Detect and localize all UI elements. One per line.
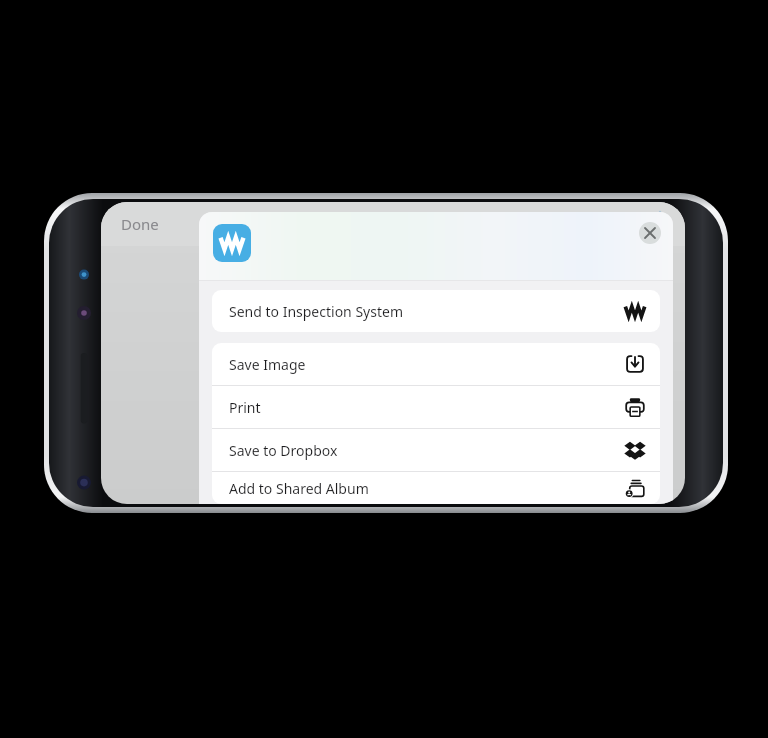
staticText: Send to Inspection System — [229, 302, 403, 321]
staticText: Add to Shared Album — [229, 479, 369, 498]
staticText: Save Image — [229, 355, 306, 374]
staticText: Done — [121, 214, 159, 234]
button[interactable]: Print — [212, 386, 660, 428]
button[interactable]: App icon — [213, 224, 251, 262]
button[interactable]: Save Image — [212, 343, 660, 385]
staticText: Save to Dropbox — [229, 441, 338, 460]
button[interactable]: Send to Inspection System — [212, 290, 660, 332]
button[interactable]: Close — [639, 222, 661, 244]
button[interactable]: Add to Shared Album — [212, 472, 660, 504]
button[interactable]: Share — [644, 205, 676, 237]
button[interactable]: Save to Dropbox — [212, 429, 660, 471]
button[interactable]: Done — [115, 211, 165, 237]
staticText: Print — [229, 398, 261, 417]
